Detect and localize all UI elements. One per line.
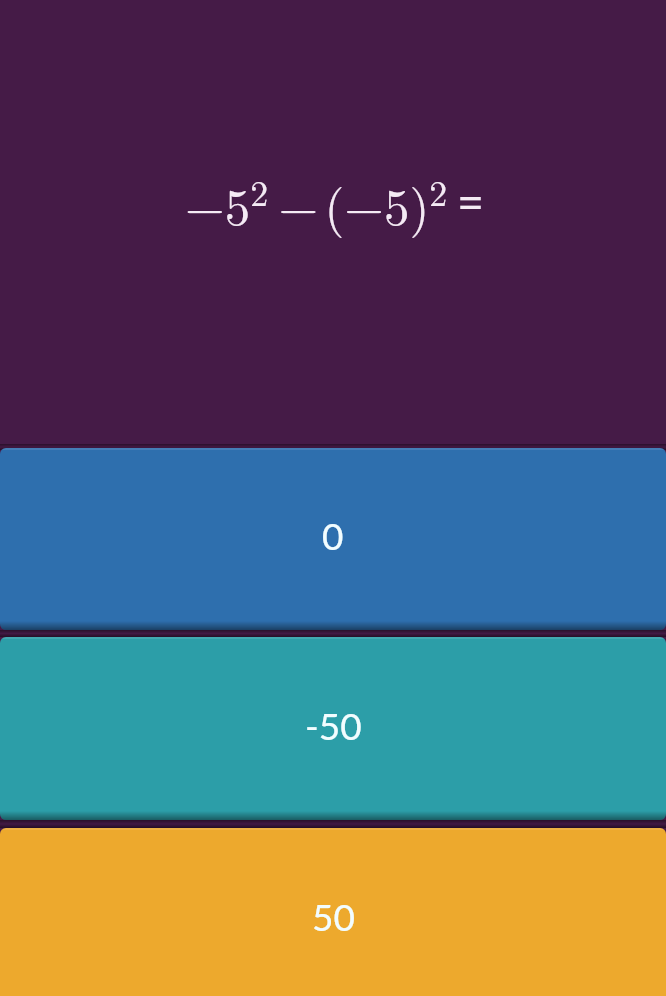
other: Question: minus 5 squared minus open par…: [1, 165, 666, 240]
staticText: 50: [312, 894, 355, 938]
staticText: −52 − (−5)2: [185, 165, 448, 240]
button[interactable]: 0: [0, 448, 666, 630]
button[interactable]: -50: [0, 637, 666, 820]
staticText: -50: [305, 703, 362, 747]
staticText: 0: [322, 513, 344, 557]
staticText: =: [458, 172, 484, 232]
button[interactable]: 50: [0, 828, 666, 996]
